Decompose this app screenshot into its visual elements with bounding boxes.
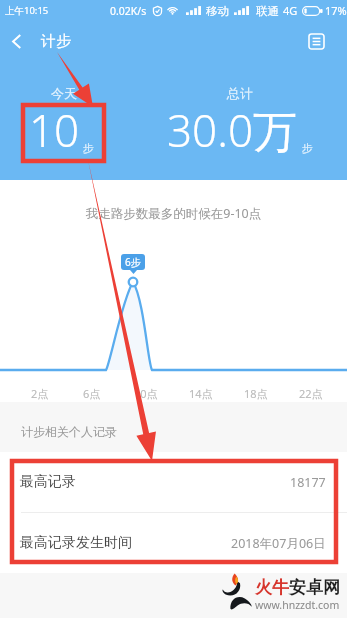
staticText: 步 [302, 141, 313, 155]
staticText: 30.0万 [167, 100, 298, 160]
staticText: 2点 [31, 386, 49, 401]
staticText: 18点 [244, 386, 268, 401]
button[interactable]: 返回 [0, 25, 33, 58]
staticText: 安卓网 [289, 577, 340, 598]
staticText: 10 [29, 100, 80, 160]
staticText: 2018年07月06日 [231, 535, 326, 552]
staticText: 17% [325, 3, 347, 18]
button[interactable]: 最高记录 [0, 452, 347, 512]
staticText: 22点 [299, 386, 323, 401]
staticText: 计步 [41, 32, 71, 51]
staticText: 联通 [256, 4, 279, 18]
staticText: www.hnzzdt.com [255, 598, 340, 612]
staticText: 最高记录发生时间 [20, 534, 132, 552]
staticText: 4G [283, 3, 298, 18]
staticText: 6步 [125, 255, 141, 269]
staticText: 18177 [290, 474, 326, 491]
button[interactable]: 最高记录发生时间 [0, 513, 347, 573]
staticText: 14点 [189, 386, 213, 401]
staticText: 我走路步数最多的时候在9-10点 [0, 205, 347, 222]
staticText: 0.02K/s [110, 4, 147, 18]
staticText: 总计 [227, 85, 253, 101]
staticText: 移动 [206, 4, 229, 18]
staticText: 今天 [51, 85, 77, 101]
staticText: 6点 [83, 386, 101, 401]
staticText: 火牛 [255, 577, 289, 598]
staticText: 步 [83, 141, 94, 155]
staticText: 上午10:15 [5, 4, 49, 17]
staticText: 最高记录 [20, 473, 76, 491]
staticText: 10点 [134, 386, 158, 401]
button[interactable]: 记录列表 [293, 21, 339, 61]
staticText: 计步相关个人记录 [21, 424, 117, 439]
